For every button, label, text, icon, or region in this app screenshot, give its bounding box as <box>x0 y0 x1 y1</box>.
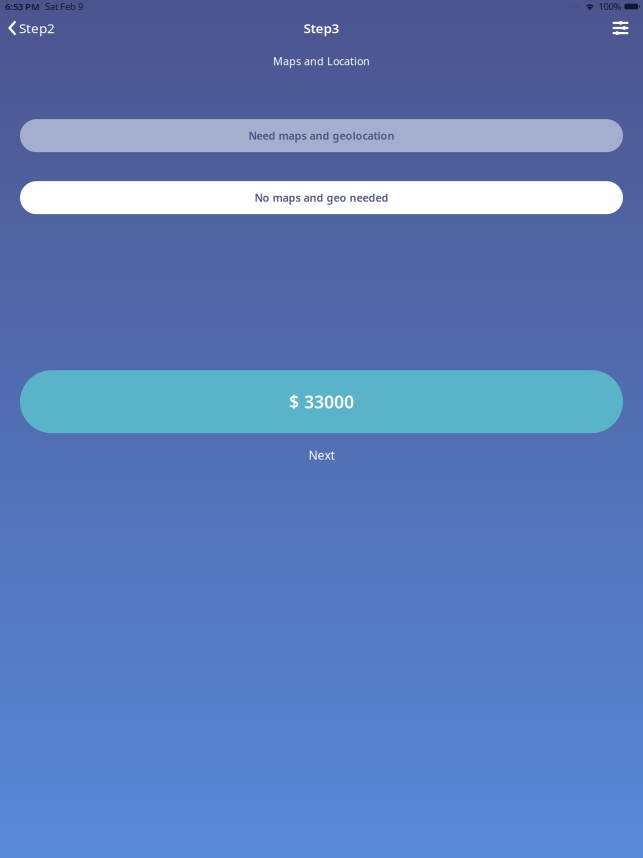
staticText: 100% <box>598 0 621 13</box>
button[interactable]: $ 33000 <box>20 370 623 433</box>
staticText: Sat Feb 9 <box>45 0 83 13</box>
staticText: Step3 <box>303 19 339 37</box>
button[interactable]: Need maps and geolocation <box>20 119 623 152</box>
button[interactable]: Adjust settings <box>605 13 636 43</box>
staticText: Step2 <box>19 19 55 37</box>
staticText: Maps and Location <box>273 54 370 68</box>
staticText: No maps and geo needed <box>254 191 388 205</box>
button[interactable]: No maps and geo needed <box>20 181 623 214</box>
staticText: $ 33000 <box>289 390 354 413</box>
staticText: Need maps and geolocation <box>248 129 394 143</box>
button[interactable]: Step2 <box>0 13 63 43</box>
staticText: 6:53 PM <box>5 0 40 13</box>
staticText: Next <box>308 447 334 463</box>
button[interactable]: Next <box>294 445 348 465</box>
